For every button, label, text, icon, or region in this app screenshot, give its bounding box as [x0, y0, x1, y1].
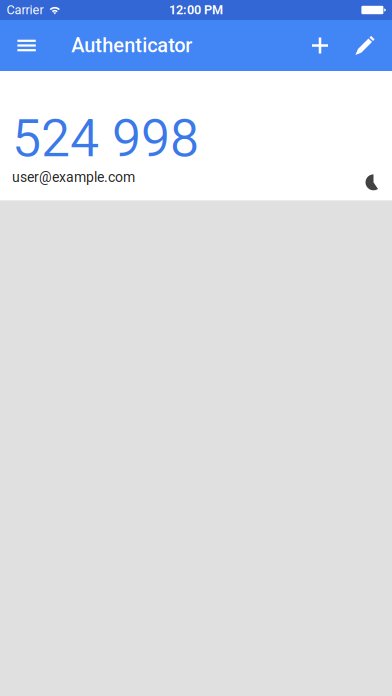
staticText: 12:00 PM [169, 3, 223, 17]
button[interactable]: 524 998 [0, 71, 392, 200]
staticText: 524 998 [12, 108, 199, 169]
staticText: Authenticator [71, 34, 192, 57]
staticText: user@example.com [12, 169, 135, 185]
button[interactable]: Menu [0, 20, 36, 71]
button[interactable]: Edit accounts [343, 20, 387, 71]
button[interactable]: Add account [297, 20, 343, 71]
staticText: Carrier [6, 3, 43, 17]
